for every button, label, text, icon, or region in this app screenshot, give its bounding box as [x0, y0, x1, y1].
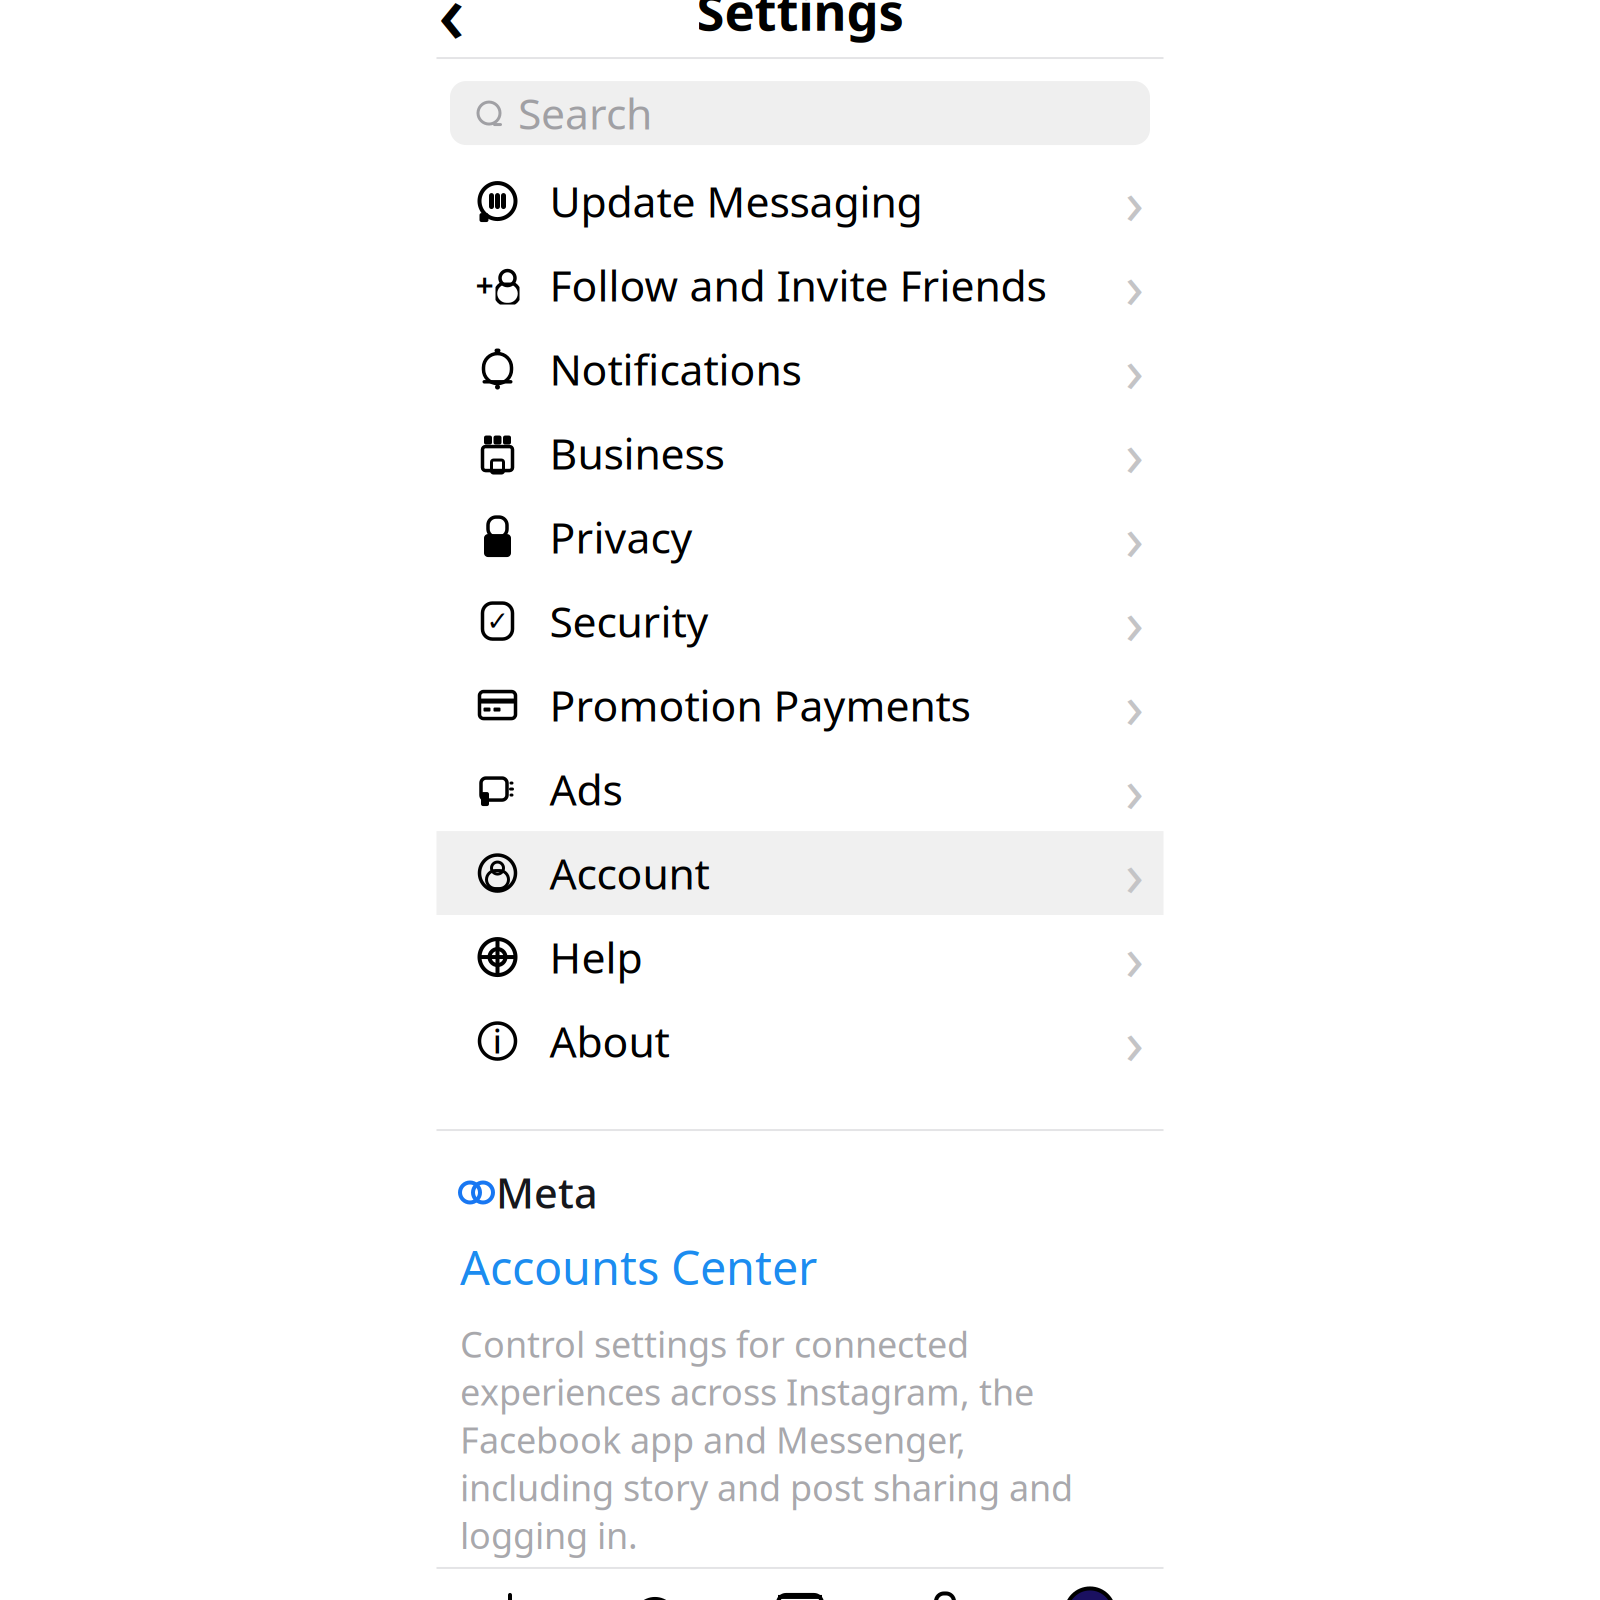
- staticText: About: [549, 1013, 669, 1069]
- staticText: Notifications: [549, 341, 801, 397]
- button[interactable]: Search: [450, 81, 1150, 145]
- staticText: Accounts Center: [460, 1236, 817, 1298]
- staticText: i: [493, 1020, 502, 1062]
- staticText: ›: [1125, 832, 1144, 914]
- button[interactable]: Promotion Payments: [436, 663, 1163, 747]
- staticText: ›: [1125, 1000, 1144, 1082]
- staticText: Account: [549, 845, 709, 901]
- staticText: Meta: [496, 1165, 598, 1220]
- staticText: ✓: [486, 606, 508, 636]
- staticText: Control settings for connected experienc…: [460, 1320, 1073, 1559]
- staticText: Follow and Invite Friends: [549, 257, 1046, 313]
- staticText: ›: [1125, 412, 1144, 494]
- button[interactable]: Help: [436, 915, 1163, 999]
- staticText: ›: [1125, 580, 1144, 662]
- button[interactable]: +: [436, 243, 1163, 327]
- staticText: Ads: [549, 761, 622, 817]
- staticText: ›: [1125, 664, 1144, 746]
- staticText: ›: [1125, 496, 1144, 578]
- staticText: Settings: [696, 0, 903, 45]
- button[interactable]: Profile: [1017, 1573, 1162, 1600]
- staticText: Security: [549, 593, 708, 649]
- staticText: Privacy: [549, 509, 692, 565]
- button[interactable]: Shop: [872, 1573, 1017, 1600]
- staticText: Business: [549, 425, 724, 481]
- staticText: ›: [1125, 244, 1144, 326]
- button[interactable]: Update Messaging: [436, 159, 1163, 243]
- button[interactable]: Reels: [727, 1573, 872, 1600]
- button[interactable]: Business: [436, 411, 1163, 495]
- button[interactable]: Accounts Center: [460, 1236, 1140, 1298]
- staticText: Help: [549, 929, 642, 985]
- button[interactable]: Search: [582, 1573, 727, 1600]
- staticText: ›: [1125, 160, 1144, 242]
- staticText: ‹: [438, 0, 465, 66]
- staticText: +: [475, 264, 493, 306]
- staticText: ›: [1125, 748, 1144, 830]
- button[interactable]: Account: [436, 831, 1163, 915]
- button[interactable]: Ads: [436, 747, 1163, 831]
- staticText: ›: [1125, 328, 1144, 410]
- staticText: Search: [518, 85, 652, 141]
- button[interactable]: ✓: [436, 579, 1163, 663]
- button[interactable]: Back: [416, 0, 486, 48]
- staticText: ›: [1125, 916, 1144, 998]
- button[interactable]: Notifications: [436, 327, 1163, 411]
- button[interactable]: i: [436, 999, 1163, 1083]
- staticText: Update Messaging: [549, 173, 922, 229]
- button[interactable]: Privacy: [436, 495, 1163, 579]
- staticText: Promotion Payments: [549, 677, 970, 733]
- button[interactable]: Home: [437, 1573, 582, 1600]
